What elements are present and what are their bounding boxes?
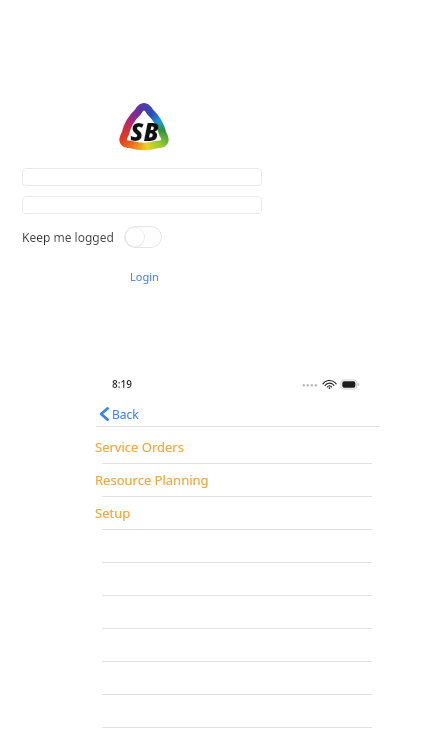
button[interactable]: Keep me logged in toggle bbox=[124, 226, 162, 248]
button[interactable]: Setup bbox=[94, 497, 384, 530]
button[interactable]: Service Orders bbox=[94, 431, 384, 464]
staticText: Back bbox=[112, 406, 139, 422]
button[interactable]: Back bbox=[98, 404, 141, 424]
staticText: Resource Planning bbox=[95, 471, 209, 489]
staticText: SB bbox=[130, 115, 159, 148]
button[interactable] bbox=[22, 196, 262, 214]
staticText: 8:19 bbox=[112, 377, 132, 391]
button[interactable] bbox=[22, 168, 262, 186]
button[interactable]: Resource Planning bbox=[94, 464, 384, 497]
staticText: Service Orders bbox=[95, 438, 184, 456]
button[interactable]: Login bbox=[110, 266, 178, 286]
staticText: Setup bbox=[95, 504, 131, 522]
staticText: Keep me logged bbox=[22, 229, 114, 245]
staticText: Login bbox=[130, 269, 159, 284]
